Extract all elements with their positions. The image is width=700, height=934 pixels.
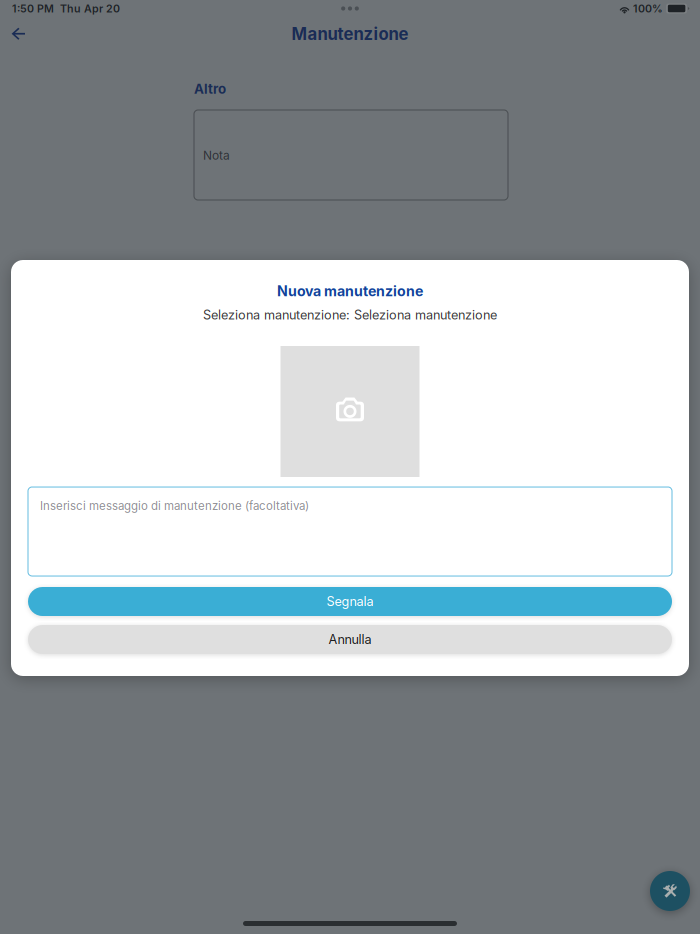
button[interactable]: Inserisci messaggio di manutenzione (fac… — [28, 487, 672, 576]
staticText: Annulla — [328, 632, 371, 647]
staticText: Seleziona manutenzione: Seleziona manute… — [203, 307, 497, 323]
staticText: Nuova manutenzione — [277, 282, 423, 299]
staticText: Nota — [203, 148, 230, 162]
button[interactable]: Nota — [194, 110, 508, 200]
button[interactable]: Aggiungi foto — [280, 346, 419, 477]
staticText: Thu Apr 20 — [54, 2, 120, 15]
staticText: Segnala — [326, 594, 373, 609]
staticText: 1:50 PM — [12, 2, 54, 15]
button[interactable]: Annulla — [28, 625, 672, 654]
button[interactable]: Indietro — [0, 19, 38, 49]
staticText: Altro — [194, 81, 226, 97]
button[interactable]: Nuova manutenzione — [650, 871, 690, 911]
button[interactable]: Segnala — [28, 587, 672, 616]
staticText: 100% — [630, 2, 666, 15]
staticText: Inserisci messaggio di manutenzione (fac… — [40, 499, 309, 513]
staticText: Manutenzione — [291, 24, 408, 44]
